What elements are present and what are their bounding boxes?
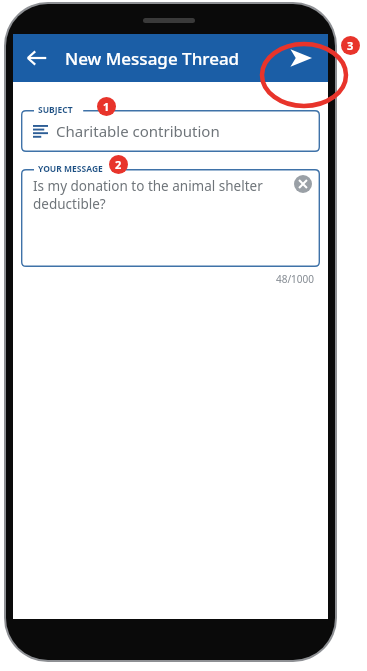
staticText: Charitable contribution bbox=[56, 121, 220, 141]
staticText: 48/1000 bbox=[21, 272, 314, 286]
staticText: Is my donation to the animal shelter ded… bbox=[33, 177, 284, 213]
staticText: 3 bbox=[347, 38, 354, 53]
staticText: 1:07 bbox=[19, 37, 41, 52]
staticText: New Message Thread bbox=[65, 47, 240, 70]
button[interactable]: Clear message bbox=[294, 175, 312, 193]
staticText: YOUR MESSAGE bbox=[38, 163, 103, 175]
staticText: 2 bbox=[115, 157, 122, 172]
button[interactable]: Send bbox=[280, 37, 322, 79]
staticText: SUBJECT bbox=[38, 104, 73, 116]
staticText: 1 bbox=[103, 99, 110, 114]
button[interactable]: Back bbox=[17, 38, 57, 78]
